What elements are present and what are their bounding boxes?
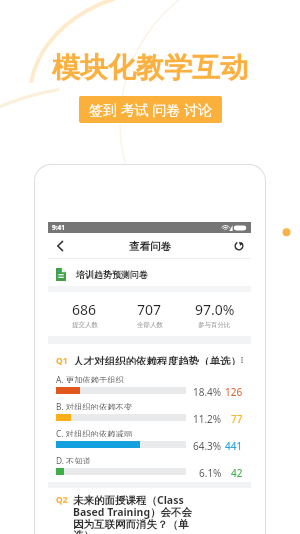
- staticText: 126: [225, 385, 243, 399]
- staticText: 18.4%: [193, 385, 222, 399]
- staticText: 441: [225, 439, 243, 453]
- staticText: 97.0%: [195, 300, 235, 319]
- staticText: 查看问卷: [129, 240, 171, 253]
- staticText: 6.1%: [199, 466, 222, 480]
- staticText: 77: [231, 412, 243, 426]
- staticText: 培训趋势预测问卷: [76, 269, 148, 280]
- staticText: 42: [231, 466, 243, 480]
- staticText: C. 对组织的依赖减弱: [56, 428, 132, 437]
- staticText: Q2: [56, 494, 68, 506]
- staticText: 全部人数: [137, 321, 163, 329]
- button[interactable]: 签到 考试 问卷 讨论: [79, 96, 222, 123]
- staticText: 64.3%: [193, 439, 222, 453]
- button[interactable]: Refresh: [232, 239, 246, 253]
- staticText: 686: [72, 300, 97, 319]
- staticText: Q1: [56, 355, 68, 365]
- staticText: 未来的面授课程（Class Based Training）会不会因为互联网而消失…: [73, 493, 198, 534]
- staticText: B. 对组织的依赖不变: [56, 401, 133, 410]
- staticText: 707: [137, 300, 162, 319]
- staticText: 模块化教学互动: [0, 50, 300, 85]
- staticText: 签到 考试 问卷 讨论: [89, 100, 212, 119]
- staticText: 11.2%: [193, 412, 222, 426]
- staticText: 参与百分比: [198, 321, 231, 329]
- staticText: 人才对组织的依赖程度趋势（单选）: [73, 355, 241, 365]
- staticText: 9:41: [52, 223, 65, 232]
- button[interactable]: Back: [53, 239, 67, 253]
- staticText: 提交人数: [72, 321, 98, 329]
- staticText: A. 更加依赖于组织: [56, 374, 124, 383]
- staticText: D. 不知道: [56, 455, 91, 464]
- button[interactable]: More options: [241, 355, 243, 365]
